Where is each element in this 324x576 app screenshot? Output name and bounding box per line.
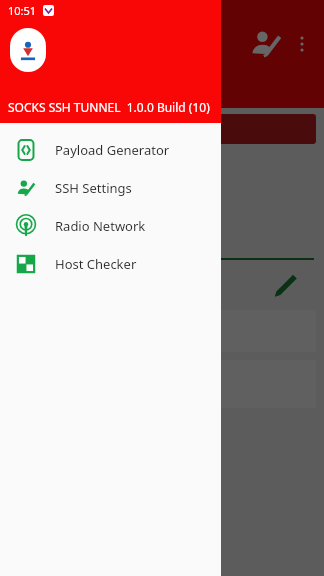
button[interactable]: SSH Settings	[0, 169, 221, 207]
button[interactable]: Payload Generator	[0, 131, 221, 169]
staticText: Connection:	[14, 224, 88, 242]
staticText: 10:51	[8, 3, 37, 18]
staticText: Online-Host:	[14, 188, 91, 206]
button[interactable]: Radio Network	[0, 207, 221, 245]
staticText: Forward-Host:	[14, 206, 101, 224]
staticText: Host Checker	[55, 255, 137, 273]
staticText: Radio Network	[55, 217, 146, 235]
staticText: SSH Settings	[55, 179, 132, 197]
button[interactable]: Direct	[8, 310, 316, 352]
staticText: Payload Generator	[55, 141, 170, 159]
staticText: SOCKS SSH TUNNEL 1.0.0 Build (10)	[8, 99, 210, 115]
button[interactable]	[8, 114, 316, 144]
button[interactable]: Edit profile	[248, 26, 284, 62]
staticText: [Socks Protocol]	[14, 156, 112, 174]
button[interactable]: More options	[284, 26, 320, 62]
button[interactable]: Host Checker	[0, 245, 221, 283]
button[interactable]: Edit	[272, 271, 300, 299]
